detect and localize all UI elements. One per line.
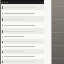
button[interactable] [1,22,44,28]
button[interactable] [1,44,44,49]
button[interactable] [1,28,44,34]
button[interactable]: App bar [1,1,44,4]
button[interactable] [1,4,44,10]
button[interactable] [1,54,44,59]
button[interactable] [1,16,44,22]
button[interactable] [1,10,44,16]
button[interactable] [1,34,44,39]
button[interactable] [1,39,44,44]
button[interactable] [1,49,44,54]
button[interactable]: Side panel [51,0,64,64]
button[interactable] [1,59,44,64]
